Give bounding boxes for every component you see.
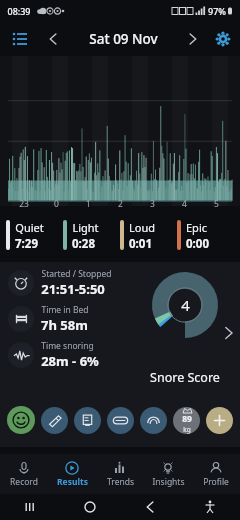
staticText: Started / Stopped: [41, 268, 112, 280]
staticText: Record: [10, 476, 38, 488]
staticText: 28m - 6%: [41, 352, 99, 370]
button[interactable]: Insights: [144, 454, 192, 494]
staticText: 2: [118, 198, 123, 210]
button[interactable]: Snore Score 4: [152, 272, 218, 338]
button[interactable]: Weight 89 kg: [173, 407, 200, 434]
staticText: 7h 58m: [41, 316, 88, 334]
staticText: 0: [54, 198, 59, 210]
staticText: Epic: [186, 220, 207, 235]
staticText: kg: [183, 425, 191, 434]
button[interactable]: Menu: [0, 22, 40, 56]
staticText: 4: [181, 295, 190, 315]
staticText: Light: [72, 220, 99, 235]
button[interactable]: Time snoring: [8, 340, 130, 370]
staticText: 08:39: [7, 5, 31, 17]
button[interactable]: Settings: [206, 22, 240, 56]
button[interactable]: Results: [48, 454, 96, 494]
button[interactable]: Nasal strip: [140, 407, 167, 434]
staticText: Snore Score: [150, 369, 220, 386]
staticText: Quiet: [15, 220, 44, 235]
staticText: Results: [57, 476, 88, 488]
staticText: Profile: [203, 476, 229, 488]
staticText: 0:28: [72, 236, 95, 252]
button[interactable]: Quiet: [6, 220, 63, 252]
staticText: Time in Bed: [41, 304, 89, 316]
button[interactable]: More details: [220, 324, 238, 342]
staticText: 0:01: [129, 236, 152, 252]
button[interactable]: Record: [0, 454, 48, 494]
button[interactable]: Trends: [96, 454, 144, 494]
button[interactable]: Profile: [192, 454, 240, 494]
staticText: 1: [86, 198, 91, 210]
staticText: 97%: [208, 5, 226, 17]
staticText: 23: [19, 198, 29, 210]
button[interactable]: Light: [63, 220, 120, 252]
button[interactable]: Loud: [120, 220, 177, 252]
button[interactable]: Mood: [7, 406, 35, 434]
button[interactable]: Started / Stopped: [8, 268, 130, 298]
staticText: Time snoring: [41, 340, 94, 352]
staticText: 89: [182, 413, 192, 425]
staticText: Sat 09 Nov: [89, 30, 158, 48]
staticText: Insights: [152, 476, 185, 488]
staticText: Trends: [107, 476, 134, 488]
button[interactable]: Previous day: [40, 22, 66, 56]
staticText: 7:29: [15, 236, 38, 252]
staticText: 21:51-5:50: [41, 280, 105, 298]
button[interactable]: Add tag: [206, 407, 233, 434]
staticText: 4: [182, 198, 187, 210]
staticText: 3: [150, 198, 155, 210]
staticText: 0:00: [186, 236, 209, 252]
staticText: 5: [214, 198, 219, 210]
button[interactable]: Next day: [180, 22, 206, 56]
staticText: Loud: [129, 220, 155, 235]
button[interactable]: Time in Bed: [8, 304, 130, 334]
button[interactable]: Sat 09 Nov: [66, 22, 180, 56]
button[interactable]: Pillow: [107, 407, 134, 434]
button[interactable]: Alcohol: [41, 407, 68, 434]
button[interactable]: Coffee: [74, 407, 101, 434]
button[interactable]: Epic: [177, 220, 234, 252]
